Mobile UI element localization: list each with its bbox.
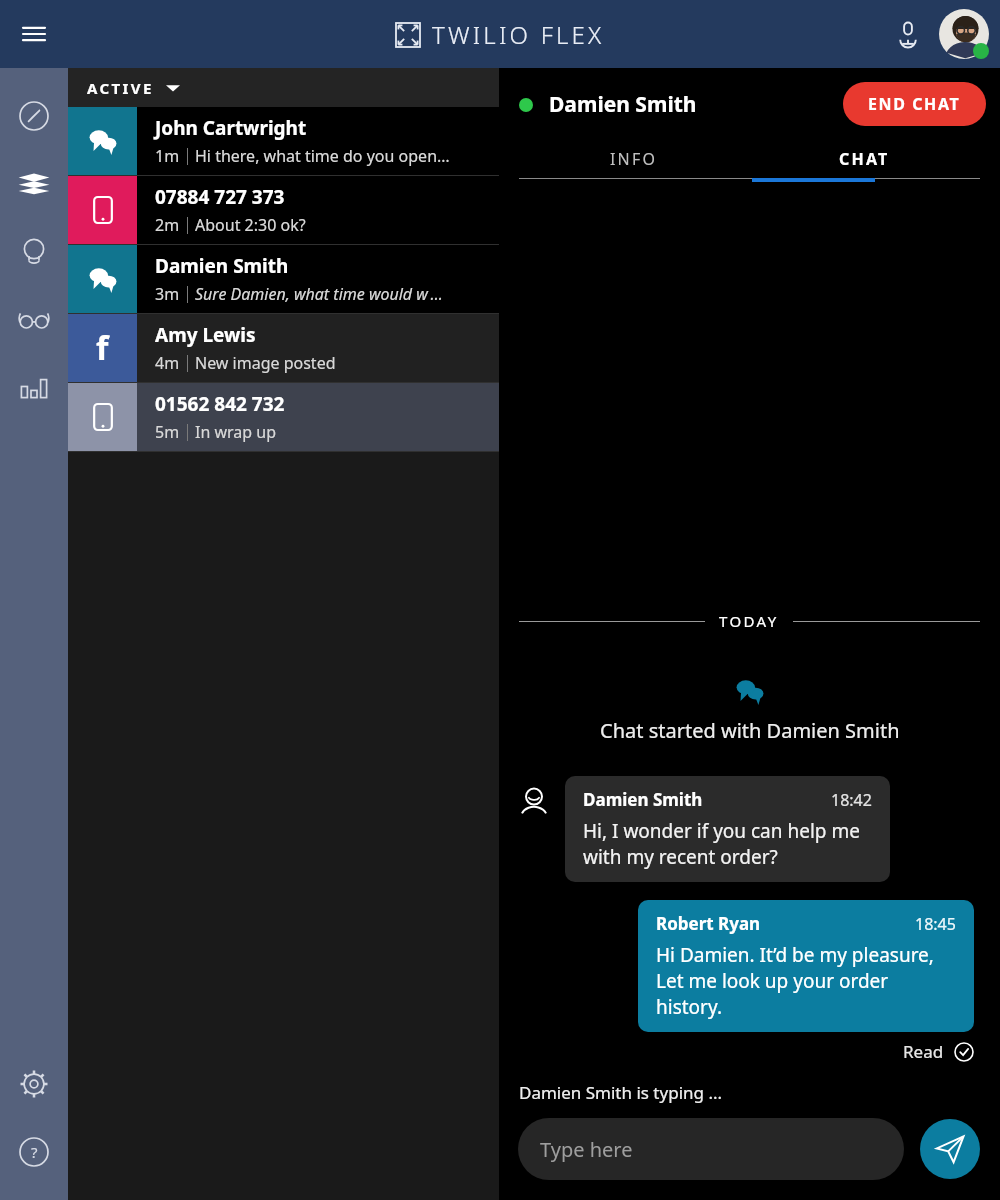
button[interactable]: Analytics — [0, 354, 68, 422]
staticText: Hi there, what time do you open… — [195, 145, 450, 167]
staticText: TWILIO FLEX — [432, 18, 605, 51]
staticText: TODAY — [719, 611, 779, 631]
staticText: Read — [903, 1040, 944, 1063]
staticText: 4m — [155, 352, 180, 374]
staticText: Damien Smith — [549, 90, 697, 119]
staticText: 3m — [155, 283, 180, 305]
staticText: CHAT — [839, 148, 890, 170]
staticText: 5m — [155, 421, 180, 443]
button[interactable]: Microphone — [884, 10, 932, 58]
staticText: f — [96, 326, 109, 370]
button[interactable]: Tasks — [0, 150, 68, 218]
button[interactable]: Monitor — [0, 286, 68, 354]
button[interactable]: CHAT — [749, 140, 980, 178]
button[interactable]: Robert Ryan — [638, 900, 974, 1032]
button[interactable]: Damien Smith — [565, 776, 890, 882]
staticText: ? — [31, 1142, 38, 1162]
button[interactable]: Insights — [0, 218, 68, 286]
staticText: About 2:30 ok? — [195, 214, 306, 236]
staticText: 07884 727 373 — [155, 184, 285, 210]
button[interactable]: Send — [920, 1119, 980, 1179]
staticText: END CHAT — [868, 93, 961, 115]
staticText: INFO — [610, 148, 658, 170]
staticText: Damien Smith — [155, 253, 289, 279]
staticText: 2m — [155, 214, 180, 236]
staticText: Hi Damien. It’d be my pleasure, Let me l… — [656, 942, 956, 1020]
staticText: 18:45 — [915, 913, 956, 935]
staticText: Sure Damien, what time would w … — [195, 283, 443, 305]
button[interactable]: 07884 727 373 — [68, 176, 499, 244]
staticText: Damien Smith is typing ... — [519, 1081, 723, 1104]
button[interactable]: f — [68, 314, 499, 382]
button[interactable]: Damien Smith — [68, 245, 499, 313]
staticText: 1m — [155, 145, 180, 167]
staticText: Amy Lewis — [155, 322, 256, 348]
staticText: Chat started with Damien Smith — [600, 717, 900, 744]
staticText: 01562 842 732 — [155, 391, 285, 417]
button[interactable]: Agent desktop — [0, 82, 68, 150]
staticText: Damien Smith — [583, 788, 703, 811]
button[interactable]: 01562 842 732 — [68, 383, 499, 451]
staticText: New image posted — [195, 352, 336, 374]
button[interactable]: Settings — [0, 1050, 68, 1118]
staticText: John Cartwright — [155, 115, 307, 141]
staticText: Type here — [540, 1136, 633, 1163]
staticText: 18:42 — [831, 789, 872, 811]
button[interactable]: John Cartwright — [68, 107, 499, 175]
staticText: Robert Ryan — [656, 912, 761, 935]
staticText: In wrap up — [195, 421, 277, 443]
button[interactable]: Help — [0, 1118, 68, 1186]
button[interactable]: ACTIVE — [68, 68, 499, 107]
button[interactable]: Type here — [518, 1118, 904, 1180]
staticText: Hi, I wonder if you can help me with my … — [583, 818, 872, 870]
button[interactable]: INFO — [519, 140, 749, 178]
button[interactable]: Menu — [10, 10, 58, 58]
button[interactable]: END CHAT — [843, 82, 986, 126]
button[interactable]: Profile — [936, 6, 992, 62]
staticText: ACTIVE — [87, 78, 154, 98]
